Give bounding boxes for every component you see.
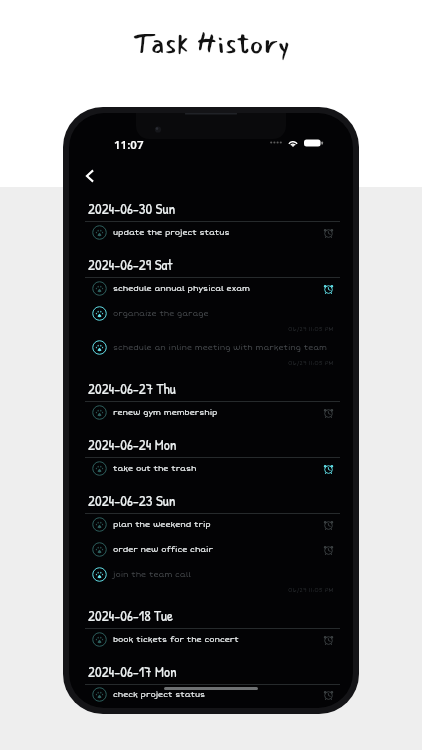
button[interactable]: organaize the garage [69,303,353,337]
staticText: 2024-06-29 Sat [88,254,173,274]
button[interactable]: Back [83,169,97,183]
button[interactable]: check project status [69,685,353,708]
button[interactable]: take out the trash [69,458,353,483]
staticText: schedule an inline meeting with marketin… [113,343,327,353]
staticText: 06/29 11:05 PM [288,360,334,367]
staticText: renew gym membership [113,408,218,418]
button[interactable]: join the team call [69,564,353,598]
button[interactable]: order new office chair [69,539,353,564]
staticText: 2024-06-23 Sun [88,490,176,510]
button[interactable]: schedule an inline meeting with marketin… [69,337,353,371]
staticText: join the team call [113,570,191,580]
staticText: book tickets for the concert [113,635,239,645]
button[interactable]: book tickets for the concert [69,629,353,654]
staticText: order new office chair [113,545,213,555]
staticText: 2024-06-24 Mon [88,434,177,454]
staticText: 06/29 11:05 PM [288,587,334,594]
staticText: take out the trash [113,464,197,474]
staticText: 06/29 11:05 PM [288,326,334,333]
button[interactable]: schedule annual physical exam [69,278,353,303]
staticText: Task History [132,22,290,66]
button[interactable]: renew gym membership [69,402,353,427]
staticText: update the project status [113,228,230,238]
staticText: organaize the garage [113,309,209,319]
staticText: plan the weekend trip [113,520,211,530]
staticText: 2024-06-27 Thu [88,378,176,398]
staticText: 2024-06-17 Mon [88,661,177,681]
staticText: 2024-06-18 Tue [88,605,173,625]
staticText: 11:07 [114,137,144,153]
staticText: schedule annual physical exam [113,284,250,294]
button[interactable]: plan the weekend trip [69,514,353,539]
staticText: check project status [113,690,206,700]
button[interactable]: update the project status [69,222,353,247]
staticText: 2024-06-30 Sun [88,198,176,218]
